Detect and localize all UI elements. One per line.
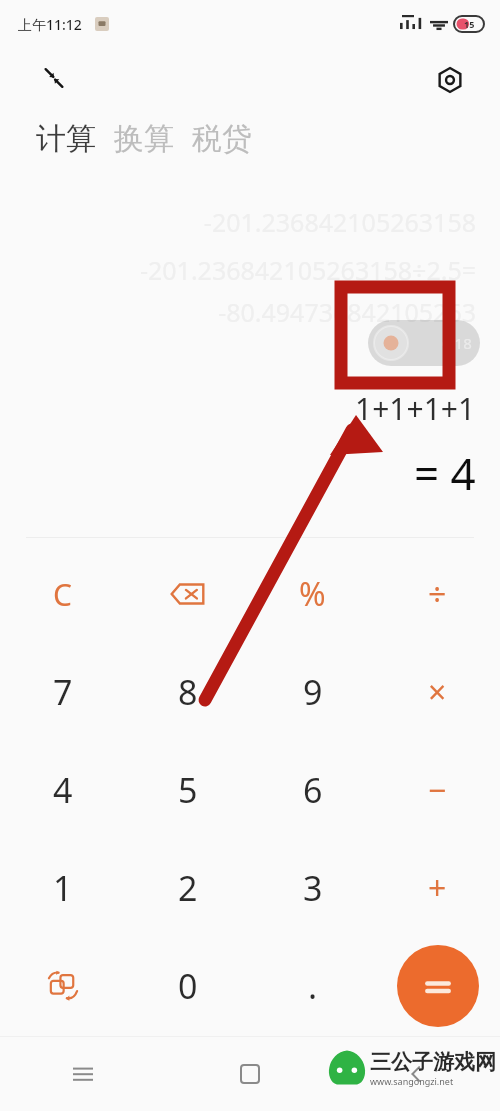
staticText: 1+1+1+1 — [355, 388, 476, 429]
staticText: -201.236842105263158 — [203, 205, 476, 239]
staticText: 5 — [178, 767, 198, 813]
staticText: % — [299, 572, 326, 616]
staticText: 换算 — [114, 120, 174, 158]
staticText: 3 — [303, 865, 323, 911]
button[interactable]: − — [375, 741, 500, 839]
staticText: 7 — [53, 669, 73, 715]
staticText: × — [428, 670, 447, 714]
staticText: C — [53, 574, 72, 615]
staticText: − — [428, 768, 447, 812]
staticText: . — [308, 963, 318, 1009]
button[interactable]: Collapse — [34, 58, 74, 98]
staticText: 9 — [303, 669, 323, 715]
button[interactable]: C — [0, 545, 125, 643]
button[interactable]: 换算 — [114, 120, 174, 158]
button[interactable]: 1 — [0, 839, 125, 937]
button[interactable]: 9 — [250, 643, 375, 741]
button[interactable]: Recents — [0, 1036, 166, 1111]
button[interactable]: . — [250, 937, 375, 1035]
staticText: 三公子游戏网 — [370, 1049, 496, 1075]
button[interactable]: 2 — [125, 839, 250, 937]
button[interactable]: Unit convert — [0, 937, 125, 1035]
button[interactable]: Settings — [428, 58, 472, 102]
staticText: -201.236842105263158÷2.5= — [139, 253, 476, 287]
button[interactable]: 5 — [125, 741, 250, 839]
button[interactable]: 6 — [250, 741, 375, 839]
staticText: ÷ — [428, 572, 447, 616]
staticText: 上午11:12 — [18, 15, 82, 34]
button[interactable]: Home — [166, 1036, 333, 1111]
staticText: 计算 — [36, 120, 96, 158]
staticText: = 4 — [414, 443, 476, 503]
button[interactable]: 3 — [250, 839, 375, 937]
staticText: www.sangongzi.net — [370, 1075, 454, 1087]
staticText: 0 — [178, 963, 198, 1009]
button[interactable]: + — [375, 839, 500, 937]
staticText: 0:18 — [442, 333, 472, 353]
button[interactable]: Equals — [397, 945, 479, 1027]
button[interactable]: % — [250, 545, 375, 643]
staticText: 税贷 — [192, 120, 252, 158]
button[interactable]: Equals — [375, 937, 500, 1035]
button[interactable]: Recording — [368, 320, 480, 366]
staticText: 1 — [53, 865, 73, 911]
button[interactable]: 8 — [125, 643, 250, 741]
button[interactable]: 4 — [0, 741, 125, 839]
button[interactable]: 0 — [125, 937, 250, 1035]
button[interactable]: 7 — [0, 643, 125, 741]
button[interactable]: × — [375, 643, 500, 741]
button[interactable]: Backspace — [125, 545, 250, 643]
staticText: 6 — [303, 767, 323, 813]
button[interactable]: ÷ — [375, 545, 500, 643]
staticText: 15 — [464, 18, 475, 30]
staticText: 2 — [178, 865, 198, 911]
staticText: 4 — [53, 767, 73, 813]
button[interactable]: Back — [333, 1036, 500, 1111]
staticText: -80.494736842105263 — [218, 295, 476, 329]
button[interactable]: 税贷 — [192, 120, 252, 158]
button[interactable]: 计算 — [36, 120, 96, 158]
staticText: 8 — [178, 669, 198, 715]
staticText: + — [428, 866, 447, 910]
